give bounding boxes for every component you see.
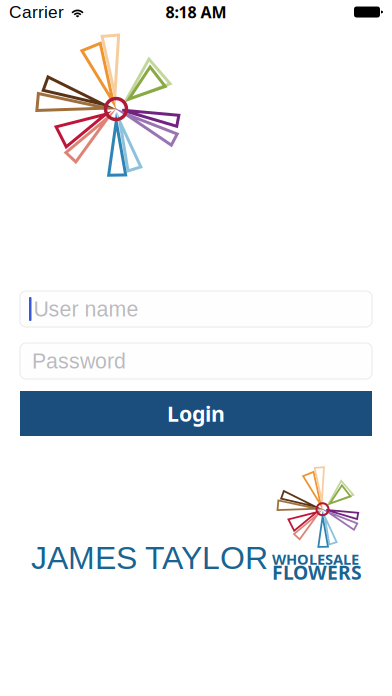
staticText: Login bbox=[167, 399, 225, 428]
staticText: 8:18 AM bbox=[165, 1, 226, 23]
button[interactable]: User name bbox=[20, 291, 372, 327]
staticText: WHOLESALE bbox=[272, 549, 359, 569]
staticText: Password bbox=[32, 349, 126, 373]
button[interactable]: Login bbox=[20, 391, 372, 436]
staticText: JAMES TAYLOR bbox=[31, 540, 268, 576]
button[interactable]: Password bbox=[20, 343, 372, 379]
staticText: FLOWERS bbox=[272, 559, 362, 585]
staticText: Carrier bbox=[9, 2, 64, 22]
staticText: User name bbox=[33, 297, 138, 321]
